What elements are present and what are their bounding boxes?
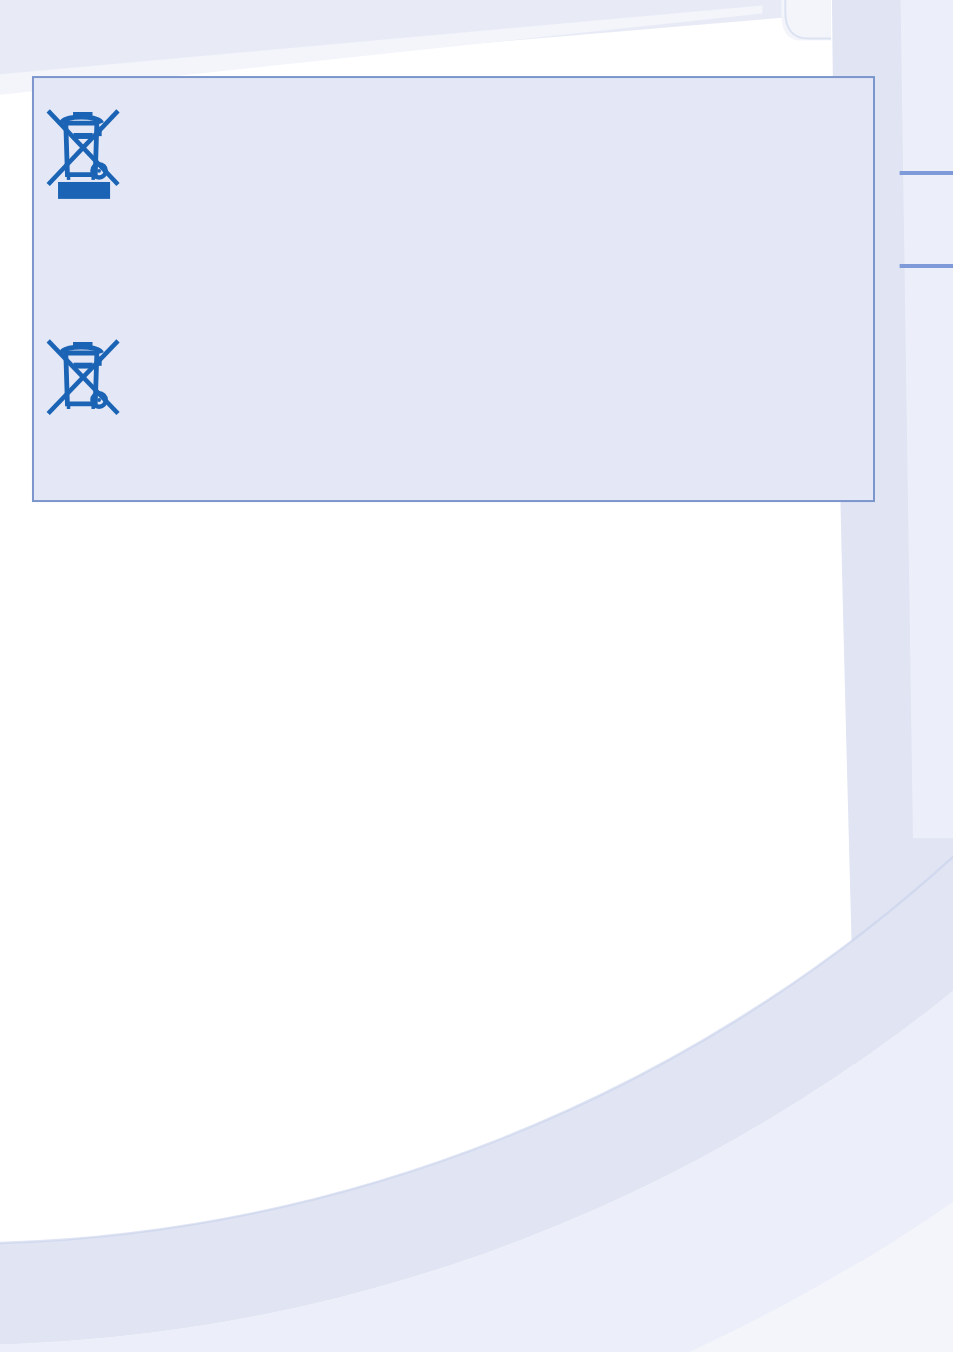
button[interactable]: Disposal information panel [0,0,953,1352]
